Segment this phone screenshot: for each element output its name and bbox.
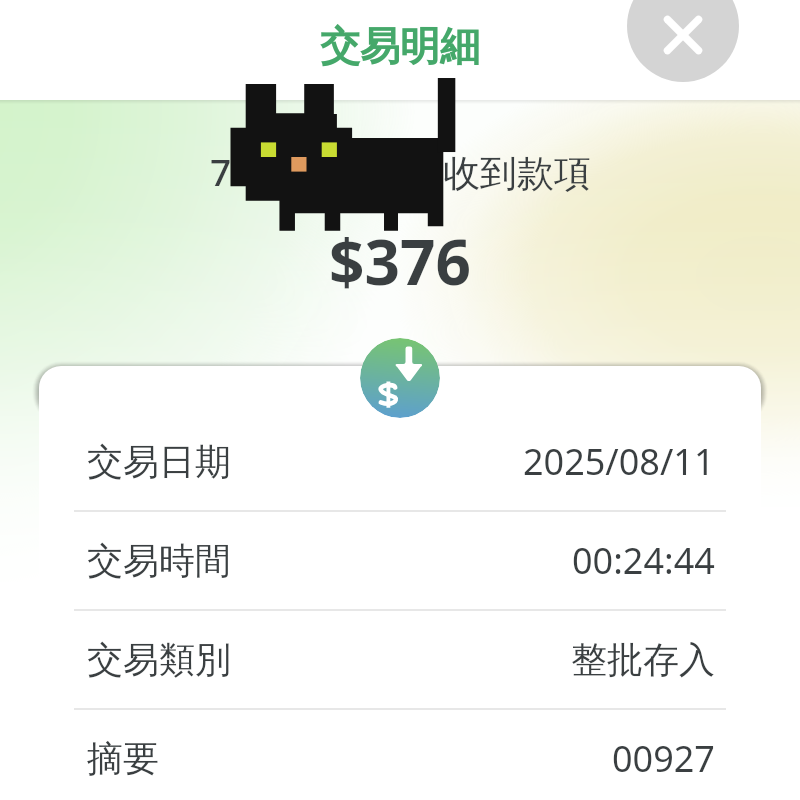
button[interactable]: 交易時間 [39,512,761,609]
staticText: 交易時間 [87,538,231,583]
staticText: 7-11統一超商 收到款項 [210,146,591,197]
staticText: 交易日期 [87,439,231,484]
button[interactable]: 交易日期 [39,413,761,510]
staticText: 整批存入 [571,637,715,682]
button[interactable]: Money received [360,338,440,418]
button[interactable]: Close [627,0,739,82]
staticText: 交易類別 [87,637,231,682]
staticText: 交易明細 [320,21,480,71]
staticText: 00927 [612,734,715,783]
button[interactable]: 摘要 [39,710,761,800]
staticText: 摘要 [87,736,159,781]
staticText: $376 [329,219,471,303]
button[interactable]: 交易類別 [39,611,761,708]
staticText: 00:24:44 [572,536,715,585]
staticText: 2025/08/11 [523,437,715,486]
